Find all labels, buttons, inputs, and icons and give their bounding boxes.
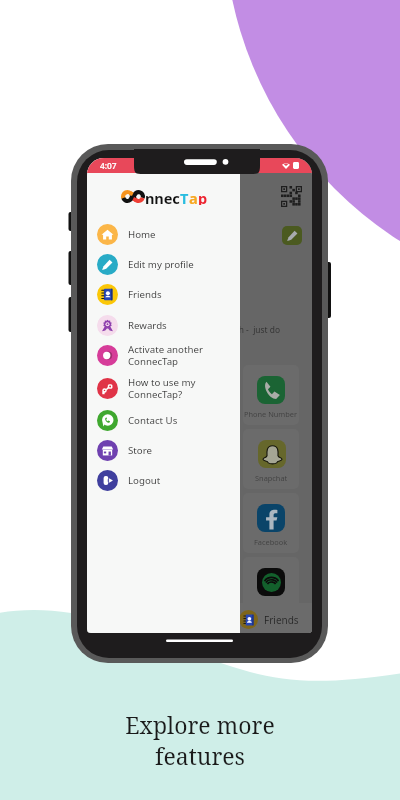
staticText: Instagram [110, 473, 146, 483]
button[interactable]: Home [87, 219, 240, 249]
button[interactable]: Facebook [243, 493, 299, 553]
staticText: Contact Us [128, 414, 178, 427]
staticText: Explore more [125, 709, 275, 740]
staticText: Phone Number [244, 409, 298, 419]
staticText: a [189, 188, 198, 205]
button[interactable]: How to use my ConnecTap? [87, 373, 240, 403]
staticText: Snapchat [255, 473, 288, 483]
button[interactable]: Friends [239, 610, 299, 629]
button[interactable]: Rewards [87, 310, 240, 340]
button[interactable]: Edit [282, 226, 302, 245]
button[interactable]: Instagram [100, 429, 156, 489]
button[interactable]: Store [87, 435, 240, 465]
staticText: Facebook [254, 537, 288, 547]
button[interactable]: Contact Us [87, 405, 240, 435]
button[interactable]: Phone Number [243, 365, 299, 425]
staticText: Designer & dreamer. Live your truth - ju… [103, 324, 280, 335]
button[interactable]: Logout [87, 465, 240, 495]
staticText: WhatsApp [110, 409, 146, 419]
button[interactable]: Spotify [243, 557, 299, 617]
staticText: Edit my profile [128, 258, 194, 271]
staticText: Rewards [128, 319, 167, 332]
staticText: nnec [145, 188, 180, 205]
button[interactable]: Activate another ConnecTap [87, 340, 240, 370]
staticText: Store [128, 444, 152, 457]
staticText: Activate another ConnecTap [128, 343, 203, 368]
button[interactable]: Edit my profile [87, 249, 240, 279]
staticText: Logout [128, 474, 161, 487]
staticText: Friends [128, 288, 162, 301]
button[interactable]: Scan QR code [281, 186, 302, 207]
button[interactable]: Friends [87, 279, 240, 309]
staticText: Friends [264, 613, 299, 627]
staticText: features [155, 740, 245, 771]
staticText: T [180, 188, 189, 205]
staticText: p [198, 188, 208, 205]
button[interactable]: Snapchat [243, 429, 299, 489]
button[interactable]: WhatsApp [100, 365, 156, 425]
staticText: How to use my ConnecTap? [128, 376, 196, 401]
staticText: Home [128, 228, 156, 241]
staticText: ConnecTap [117, 185, 199, 205]
staticText: 4:07 [100, 160, 117, 171]
button[interactable]: Email [171, 365, 227, 425]
